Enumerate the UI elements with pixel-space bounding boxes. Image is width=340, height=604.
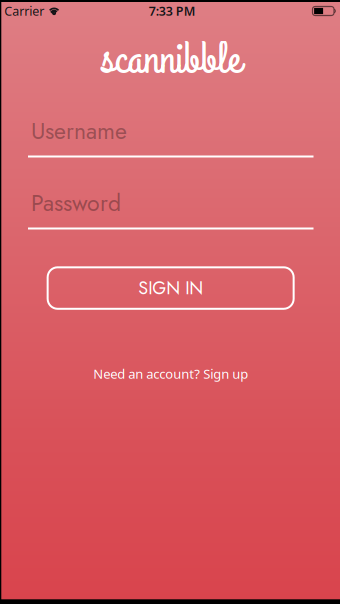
button[interactable]: Need an account? Sign up xyxy=(93,365,248,382)
staticText: scannibble xyxy=(101,29,241,90)
button[interactable]: SIGN IN xyxy=(48,267,294,309)
staticText: Password xyxy=(31,186,121,219)
staticText: Username xyxy=(31,114,127,147)
button[interactable]: Password xyxy=(28,157,313,229)
button[interactable]: Username xyxy=(28,88,313,157)
staticText: SIGN IN xyxy=(138,275,203,301)
staticText: Carrier xyxy=(4,2,44,19)
staticText: 7:33 PM xyxy=(149,2,196,19)
staticText: Need an account? Sign up xyxy=(93,365,248,382)
